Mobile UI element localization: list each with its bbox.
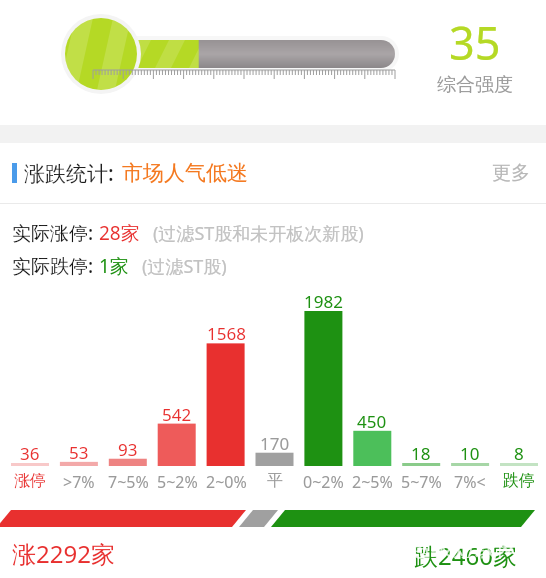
staticText: 7~5% (108, 471, 149, 493)
staticText: 36 (20, 442, 40, 465)
staticText: >7% (63, 471, 95, 493)
staticText: 0~2% (303, 471, 344, 493)
staticText: 平 (267, 471, 283, 491)
button[interactable]: 18 (397, 442, 445, 465)
staticText: (过滤ST股) (142, 254, 227, 279)
staticText: 1982 (304, 290, 343, 313)
button[interactable]: 更多 (488, 153, 534, 193)
button[interactable]: 170 (251, 432, 299, 455)
button[interactable]: 1568 (202, 322, 250, 345)
staticText: 涨停 (14, 471, 46, 491)
staticText: 28家 (99, 220, 140, 246)
button[interactable]: 10 (446, 442, 494, 465)
staticText: 450 (357, 410, 387, 433)
staticText: 542 (162, 403, 192, 426)
button[interactable]: 53 (55, 441, 103, 464)
staticText: 170 (260, 432, 290, 455)
staticText: 实际跌停: (12, 253, 94, 279)
staticText: 更多 (492, 161, 530, 185)
staticText: 涨跌统计: (24, 159, 114, 188)
staticText: (过滤ST股和未开板次新股) (153, 221, 364, 246)
staticText: 8 (514, 442, 524, 465)
staticText: 综合强度 (437, 73, 513, 97)
staticText: 2~0% (206, 471, 247, 493)
button[interactable]: 跌2460家 (414, 539, 517, 572)
staticText: 实际涨停: (12, 220, 94, 246)
staticText: 1家 (99, 253, 129, 279)
staticText: 1568 (207, 322, 246, 345)
button[interactable]: 8 (495, 442, 543, 465)
staticText: 10 (460, 442, 480, 465)
button[interactable]: 542 (153, 403, 201, 426)
staticText: 5~7% (401, 471, 442, 493)
staticText: 跌2460家 (414, 539, 517, 572)
button[interactable]: 1982 (299, 290, 347, 313)
staticText: 5~2% (157, 471, 198, 493)
other: Watermark (409, 535, 541, 563)
staticText: 53 (69, 441, 89, 464)
button[interactable]: 93 (104, 438, 152, 461)
button[interactable]: 450 (348, 410, 396, 433)
button[interactable]: 涨2292家 (12, 537, 115, 570)
staticText: 超级短线网家 (409, 535, 541, 563)
staticText: 2~5% (352, 471, 393, 493)
staticText: 35 (449, 12, 501, 73)
staticText: 93 (118, 438, 138, 461)
staticText: 7%< (454, 471, 486, 493)
button[interactable]: 36 (6, 442, 54, 465)
staticText: 涨2292家 (12, 537, 115, 570)
staticText: 市场人气低迷 (122, 160, 248, 186)
staticText: 跌停 (503, 471, 535, 491)
staticText: 18 (411, 442, 431, 465)
